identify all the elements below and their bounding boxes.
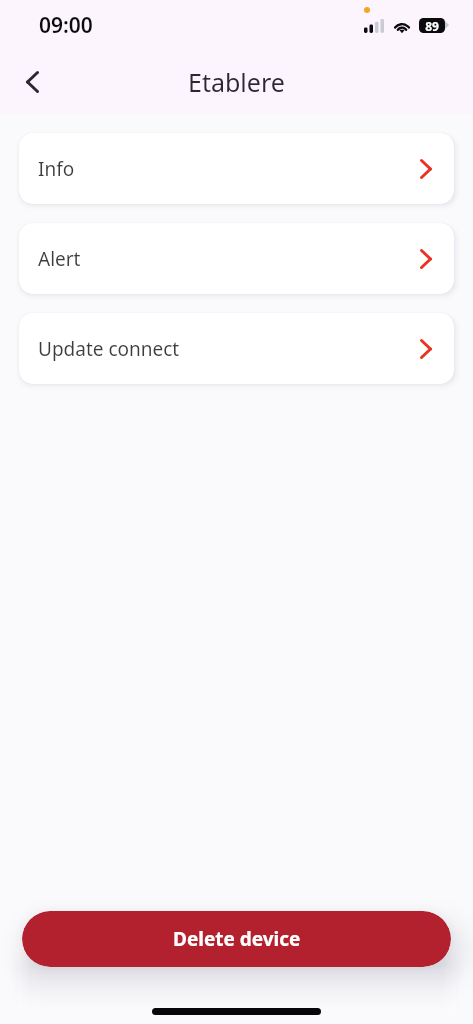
button[interactable]: Back <box>8 58 56 106</box>
staticText: Info <box>38 156 75 182</box>
staticText: Alert <box>38 246 81 272</box>
button[interactable]: Alert <box>19 223 454 294</box>
staticText: 89 <box>425 18 439 33</box>
button[interactable]: Delete device <box>22 911 451 967</box>
staticText: 09:00 <box>39 11 93 40</box>
staticText: Delete device <box>173 926 301 952</box>
button[interactable]: Update connect <box>19 313 454 384</box>
button[interactable]: Info <box>19 133 454 204</box>
staticText: Update connect <box>38 336 180 362</box>
staticText: Etablere <box>188 65 285 99</box>
